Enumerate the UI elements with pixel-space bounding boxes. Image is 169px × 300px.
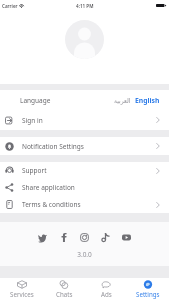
staticText: Sign in bbox=[22, 116, 43, 125]
staticText: 4:11 PM bbox=[76, 3, 94, 9]
button[interactable]: Instagram bbox=[74, 230, 95, 245]
button[interactable]: Language bbox=[0, 90, 169, 110]
button[interactable]: Settings bbox=[127, 278, 169, 300]
button[interactable]: YouTube bbox=[116, 230, 137, 245]
staticText: Notification Settings bbox=[22, 142, 84, 151]
staticText: English bbox=[135, 96, 160, 105]
button[interactable]: Share application bbox=[0, 179, 169, 196]
staticText: Chats bbox=[56, 290, 73, 298]
button[interactable]: Services bbox=[0, 278, 43, 300]
button[interactable]: Support bbox=[0, 162, 169, 179]
button[interactable]: Twitter bbox=[32, 230, 53, 245]
button[interactable]: Terms & conditions bbox=[0, 196, 169, 213]
staticText: Ads bbox=[101, 290, 112, 298]
staticText: 3.0.0 bbox=[0, 250, 169, 259]
staticText: Share application bbox=[22, 183, 75, 192]
staticText: العربية bbox=[114, 97, 131, 104]
button[interactable]: Sign in bbox=[0, 110, 169, 130]
staticText: Services bbox=[10, 290, 34, 298]
button[interactable]: Ads bbox=[85, 278, 127, 300]
staticText: Support bbox=[22, 166, 47, 175]
staticText: Settings bbox=[136, 290, 160, 298]
button[interactable]: Facebook bbox=[53, 230, 74, 245]
button[interactable]: Notification Settings bbox=[0, 137, 169, 155]
staticText: Language bbox=[20, 96, 51, 105]
staticText: Terms & conditions bbox=[22, 200, 81, 209]
staticText: Carrier bbox=[2, 3, 18, 9]
button[interactable]: Chats bbox=[43, 278, 85, 300]
button[interactable]: TikTok bbox=[95, 230, 116, 245]
